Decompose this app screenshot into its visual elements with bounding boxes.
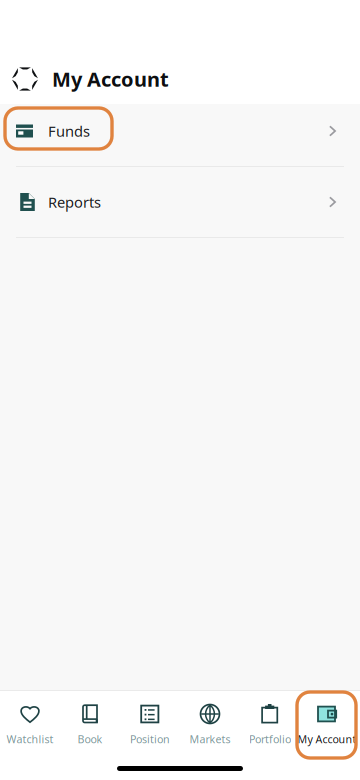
staticText: Reports — [48, 192, 101, 212]
staticText: Watchlist — [6, 732, 53, 746]
staticText: Position — [130, 732, 170, 746]
button[interactable]: Book — [60, 691, 120, 757]
staticText: Book — [77, 732, 102, 746]
button[interactable]: Position — [120, 691, 180, 757]
staticText: Portfolio — [249, 732, 291, 746]
staticText: My Account — [52, 66, 169, 92]
staticText: Markets — [189, 732, 230, 746]
staticText: Funds — [48, 121, 90, 141]
button[interactable]: Markets — [180, 691, 240, 757]
button[interactable]: Portfolio — [240, 691, 300, 757]
button[interactable]: Watchlist — [0, 691, 60, 757]
button[interactable]: Funds — [0, 96, 360, 166]
button[interactable]: Reports — [0, 167, 360, 237]
button[interactable]: My Account — [296, 691, 358, 757]
staticText: My Account — [297, 732, 356, 746]
